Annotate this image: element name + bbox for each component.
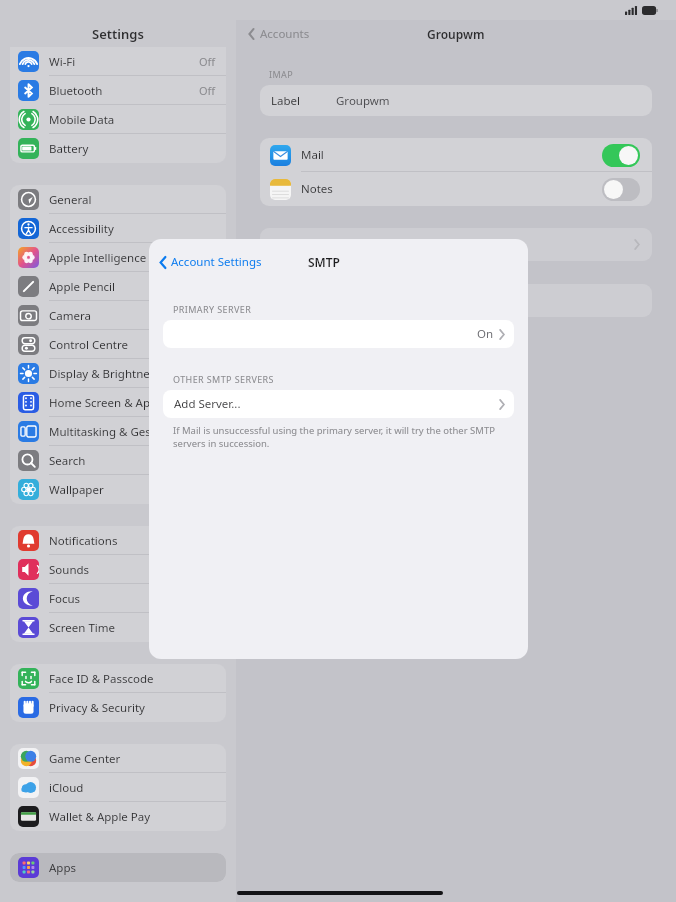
button[interactable]: Control Centre xyxy=(10,330,226,359)
button[interactable]: Apple Pencil xyxy=(10,272,226,301)
staticText: OTHER SMTP SERVERS xyxy=(173,373,274,385)
button[interactable]: Display & Brightness xyxy=(10,359,226,388)
staticText: Notifications xyxy=(49,533,216,549)
button[interactable]: Notes xyxy=(260,172,652,206)
staticText: Sounds xyxy=(49,562,216,578)
staticText: On xyxy=(477,326,494,342)
button[interactable]: Focus xyxy=(10,584,226,613)
button[interactable]: Accounts xyxy=(236,22,318,46)
button[interactable]: Camera xyxy=(10,301,226,330)
button[interactable] xyxy=(260,284,652,317)
button[interactable]: Bluetooth xyxy=(10,76,226,105)
button[interactable]: Off xyxy=(602,178,640,201)
staticText: Off xyxy=(199,54,216,69)
button[interactable]: Wi-Fi xyxy=(10,47,226,76)
staticText: Accounts xyxy=(260,26,310,42)
staticText: Mobile Data xyxy=(49,112,216,128)
staticText: Camera xyxy=(49,308,216,324)
button[interactable]: Face ID & Passcode xyxy=(10,664,226,693)
staticText: Groupwm xyxy=(336,93,390,109)
staticText: Apps xyxy=(49,860,216,876)
staticText: SMTP xyxy=(308,254,340,270)
staticText: IMAP xyxy=(269,68,294,80)
button[interactable]: Add Server... xyxy=(163,390,514,418)
staticText: If Mail is unsuccessful using the primar… xyxy=(173,424,510,450)
staticText: Search xyxy=(49,453,216,469)
button[interactable]: Game Center xyxy=(10,744,226,773)
button[interactable]: Sounds xyxy=(10,555,226,584)
button[interactable]: Search xyxy=(10,446,226,475)
button[interactable]: Mail xyxy=(260,138,652,172)
staticText: Account Settings xyxy=(171,254,262,270)
staticText: Face ID & Passcode xyxy=(49,671,216,687)
staticText: Apple Intelligence & Siri xyxy=(49,250,216,266)
button[interactable]: General xyxy=(10,185,226,214)
staticText: Multitasking & Gestures xyxy=(49,424,216,440)
staticText: Game Center xyxy=(49,751,216,767)
staticText: Notes xyxy=(301,181,602,197)
button[interactable]: Multitasking & Gestures xyxy=(10,417,226,446)
staticText: iCloud xyxy=(49,780,216,796)
staticText: Focus xyxy=(49,591,216,607)
button[interactable]: Apple Intelligence & Siri xyxy=(10,243,226,272)
staticText: Wallpaper xyxy=(49,482,216,498)
staticText: Control Centre xyxy=(49,337,216,353)
button[interactable]: Account Settings xyxy=(149,251,270,273)
button[interactable]: Accessibility xyxy=(10,214,226,243)
button[interactable]: iCloud xyxy=(10,773,226,802)
button[interactable]: Home Screen & App Library xyxy=(10,388,226,417)
button[interactable]: On xyxy=(163,320,514,348)
staticText: PRIMARY SERVER xyxy=(173,303,252,315)
staticText: Add Server... xyxy=(174,396,241,412)
button[interactable]: Label xyxy=(260,85,652,116)
button[interactable]: On xyxy=(602,144,640,167)
staticText: Battery xyxy=(49,141,216,157)
button[interactable]: Battery xyxy=(10,134,226,163)
staticText: Label xyxy=(271,93,301,109)
staticText: Wallet & Apple Pay xyxy=(49,809,216,825)
staticText: Bluetooth xyxy=(49,83,199,99)
staticText: Mail xyxy=(301,147,602,163)
staticText: Privacy & Security xyxy=(49,700,216,716)
staticText: Off xyxy=(199,83,216,98)
button[interactable]: Privacy & Security xyxy=(10,693,226,722)
button[interactable]: Apps xyxy=(10,853,226,882)
staticText: Accessibility xyxy=(49,221,216,237)
staticText: Display & Brightness xyxy=(49,366,216,382)
staticText: Home Screen & App Library xyxy=(49,395,216,411)
staticText: General xyxy=(49,192,216,208)
button[interactable] xyxy=(260,228,652,261)
staticText: Screen Time xyxy=(49,620,216,636)
button[interactable]: Notifications xyxy=(10,526,226,555)
button[interactable]: Wallet & Apple Pay xyxy=(10,802,226,831)
button[interactable]: Screen Time xyxy=(10,613,226,642)
staticText: Settings xyxy=(92,25,144,43)
button[interactable]: Wallpaper xyxy=(10,475,226,504)
staticText: Apple Pencil xyxy=(49,279,216,295)
staticText: Wi-Fi xyxy=(49,54,199,70)
staticText: Groupwm xyxy=(427,26,485,42)
button[interactable]: Mobile Data xyxy=(10,105,226,134)
